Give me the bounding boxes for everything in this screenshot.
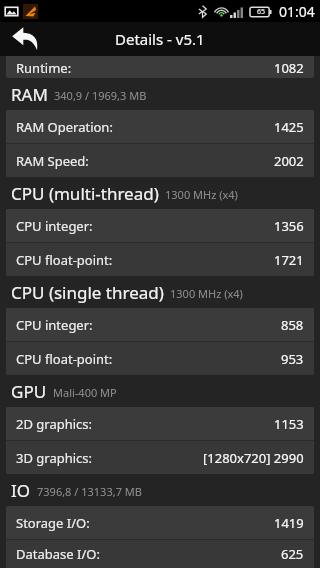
staticText: RAM Operation:: [16, 118, 113, 136]
staticText: 2D graphics:: [16, 415, 93, 433]
staticText: CPU (multi-thread): [11, 182, 159, 205]
staticText: Mali-400 MP: [53, 385, 117, 400]
staticText: 01:04: [279, 2, 315, 21]
button[interactable]: CPU integer:: [6, 209, 314, 242]
staticText: 953: [281, 350, 304, 368]
staticText: GPU: [11, 380, 47, 403]
staticText: 1356: [274, 217, 304, 235]
button[interactable]: Database I/O:: [6, 540, 314, 568]
staticText: RAM: [11, 83, 48, 106]
staticText: 340,9 / 1969,3 MB: [54, 88, 147, 103]
staticText: 7396,8 / 13133,7 MB: [37, 484, 142, 499]
button[interactable]: Back: [0, 22, 50, 56]
staticText: 625: [281, 545, 304, 563]
staticText: Storage I/O:: [16, 514, 90, 532]
staticText: Runtime:: [16, 59, 72, 75]
button[interactable]: Runtime:: [6, 56, 314, 78]
staticText: 3D graphics:: [16, 449, 93, 467]
button[interactable]: 3D graphics:: [6, 441, 314, 474]
staticText: 858: [281, 316, 304, 334]
staticText: [1280x720] 2990: [203, 449, 304, 467]
staticText: 1425: [274, 118, 304, 136]
staticText: Database I/O:: [16, 545, 100, 563]
staticText: CPU integer:: [16, 217, 93, 235]
staticText: CPU integer:: [16, 316, 93, 334]
staticText: 1721: [274, 251, 304, 269]
staticText: 1300 MHz (x4): [170, 286, 243, 301]
staticText: CPU float-point:: [16, 251, 113, 269]
button[interactable]: RAM Operation:: [6, 110, 314, 143]
staticText: 65: [257, 7, 266, 17]
staticText: 1300 MHz (x4): [165, 187, 238, 202]
staticText: IO: [11, 479, 31, 502]
staticText: CPU (single thread): [11, 281, 164, 304]
button[interactable]: RAM Speed:: [6, 144, 314, 177]
button[interactable]: CPU float-point:: [6, 342, 314, 375]
staticText: 1153: [274, 415, 304, 433]
button[interactable]: CPU float-point:: [6, 243, 314, 276]
staticText: 2002: [274, 152, 304, 170]
button[interactable]: Storage I/O:: [6, 506, 314, 539]
staticText: CPU float-point:: [16, 350, 113, 368]
staticText: 1082: [274, 59, 304, 75]
staticText: 1419: [274, 514, 304, 532]
button[interactable]: 2D graphics:: [6, 407, 314, 440]
staticText: Details - v5.1: [115, 29, 205, 49]
button[interactable]: CPU integer:: [6, 308, 314, 341]
staticText: RAM Speed:: [16, 152, 89, 170]
